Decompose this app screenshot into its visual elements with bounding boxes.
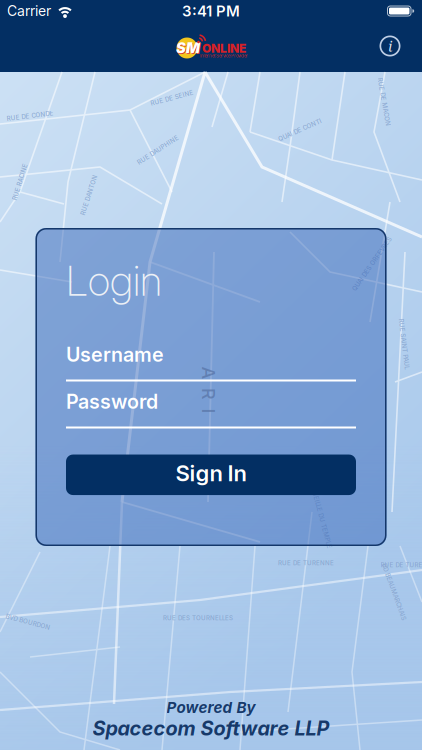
staticText: Powered By <box>166 698 255 717</box>
staticText: I <box>206 400 211 422</box>
button[interactable]: Password <box>66 365 356 441</box>
staticText: Password <box>66 390 158 413</box>
staticText: RUE RACINE <box>1 178 39 186</box>
staticText: Login <box>66 256 162 306</box>
staticText: R <box>202 383 214 405</box>
staticText: A <box>202 362 215 384</box>
staticText: RUE DE SEINE <box>150 94 194 102</box>
staticText: Internet Service Provider <box>200 53 248 59</box>
staticText: QUAI DES ORFEVRES <box>340 260 404 268</box>
staticText: ONLINE <box>202 41 246 56</box>
staticText: Carrier <box>7 2 51 19</box>
staticText: BVD BOURDON <box>5 618 51 626</box>
button[interactable]: Sign In <box>66 455 356 495</box>
staticText: RUE DAUPHINE <box>134 146 182 154</box>
button[interactable]: Info <box>375 31 405 61</box>
staticText: Sign In <box>175 460 246 487</box>
staticText: Username <box>66 343 164 366</box>
staticText: i <box>388 36 392 56</box>
staticText: RUE DE CONDE <box>6 112 53 120</box>
staticText: RUE DE TUREN <box>380 561 422 569</box>
staticText: SM <box>177 40 201 57</box>
staticText: RUE SAINT PAUL <box>378 340 422 348</box>
staticText: QUAI DE CONTI <box>276 126 323 134</box>
button[interactable]: Username <box>66 318 356 394</box>
staticText: SM <box>176 39 200 57</box>
staticText: RUE DES TOURNELLES <box>163 614 233 622</box>
staticText: RUE DANTON <box>68 191 110 199</box>
staticText: BD BEAUMARCHAIS <box>364 588 422 596</box>
staticText: Spacecom Software LLP <box>92 716 329 740</box>
staticText: RUE DE TURENNE <box>278 559 334 567</box>
staticText: RUE DE MACON <box>359 98 408 106</box>
staticText: 3:41 PM <box>182 2 240 20</box>
